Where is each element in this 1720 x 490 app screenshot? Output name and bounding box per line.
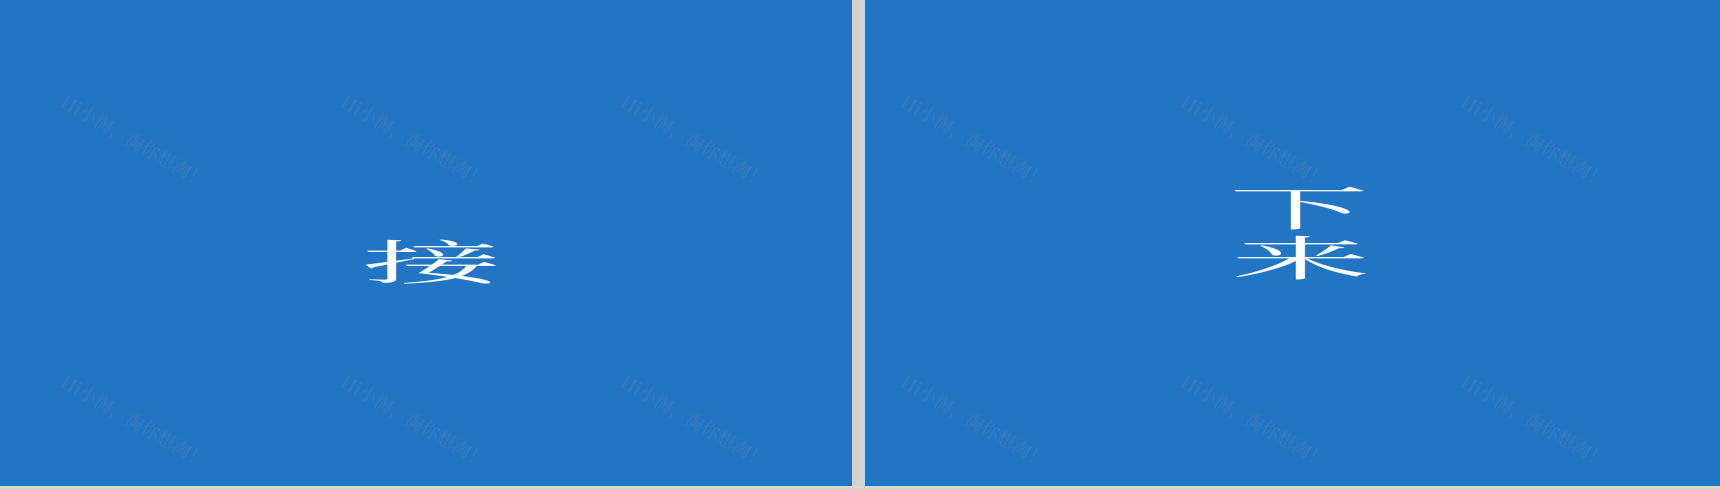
staticText: Hi小淘，淘你想淘！	[51, 407, 216, 433]
staticText: Hi小淘，淘你想淘！	[1171, 127, 1336, 153]
staticText: Hi小淘，淘你想淘！	[331, 407, 496, 433]
staticText: 来	[1259, 196, 1342, 314]
staticText: Hi小淘，淘你想淘！	[331, 127, 496, 153]
staticText: Hi小淘，淘你想淘！	[1451, 407, 1616, 433]
staticText: 下	[1257, 146, 1340, 264]
staticText: Hi小淘，淘你想淘！	[1171, 407, 1336, 433]
staticText: Hi小淘，淘你想淘！	[611, 127, 776, 153]
staticText: Hi小淘，淘你想淘！	[1451, 127, 1616, 153]
button[interactable]: Next page	[865, 0, 1720, 490]
staticText: Hi小淘，淘你想淘！	[51, 127, 216, 153]
staticText: Hi小淘，淘你想淘！	[891, 407, 1056, 433]
button[interactable]: Previous page	[0, 0, 852, 490]
staticText: Hi小淘，淘你想淘！	[891, 127, 1056, 153]
staticText: 接	[390, 200, 473, 318]
staticText: Hi小淘，淘你想淘！	[611, 407, 776, 433]
